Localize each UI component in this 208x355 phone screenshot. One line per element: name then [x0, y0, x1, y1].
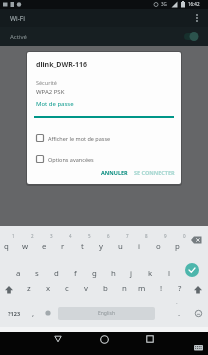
button[interactable]: Options avancées: [36, 154, 94, 164]
button[interactable]: c: [58, 282, 76, 295]
staticText: x: [46, 283, 51, 294]
button[interactable]: 0: [175, 229, 193, 242]
button[interactable]: 2: [23, 229, 41, 242]
button[interactable]: Activé: [0, 27, 208, 46]
staticText: g: [92, 268, 97, 279]
button[interactable]: ,: [27, 300, 39, 326]
button[interactable]: j: [122, 267, 140, 280]
staticText: ?123: [8, 310, 21, 317]
button[interactable]: 5: [80, 229, 98, 242]
staticText: b: [103, 283, 108, 294]
button[interactable]: u: [111, 240, 129, 253]
button[interactable]: English: [58, 307, 155, 320]
button[interactable]: 6: [99, 229, 117, 242]
staticText: y: [99, 241, 103, 252]
button[interactable]: ?123: [2, 300, 26, 326]
staticText: 1: [12, 233, 15, 239]
staticText: m: [138, 283, 146, 294]
staticText: r: [61, 241, 65, 252]
button[interactable]: [97, 332, 111, 346]
staticText: o: [156, 241, 161, 252]
button[interactable]: e: [35, 240, 53, 253]
button[interactable]: 8: [137, 229, 155, 242]
staticText: c: [65, 283, 69, 294]
button[interactable]: [189, 281, 206, 299]
button[interactable]: q: [0, 240, 15, 253]
button[interactable]: [186, 231, 206, 249]
staticText: 2: [31, 233, 34, 239]
staticText: t: [81, 241, 84, 252]
button[interactable]: p: [168, 240, 186, 253]
button[interactable]: z: [20, 282, 38, 295]
button[interactable]: 3: [42, 229, 60, 242]
button[interactable]: i: [130, 240, 148, 253]
staticText: 7: [126, 233, 129, 239]
button[interactable]: [192, 343, 205, 354]
staticText: d: [54, 268, 59, 279]
staticText: English: [98, 310, 116, 317]
button[interactable]: r: [54, 240, 72, 253]
button[interactable]: Afficher le mot de passe: [36, 133, 111, 143]
button[interactable]: h: [104, 267, 122, 280]
staticText: 4: [69, 233, 72, 239]
button[interactable]: [177, 263, 206, 277]
staticText: s: [35, 268, 39, 279]
button[interactable]: [51, 332, 65, 346]
button[interactable]: g: [85, 267, 103, 280]
button[interactable]: s: [28, 267, 46, 280]
button[interactable]: m: [133, 282, 151, 295]
staticText: a: [16, 268, 21, 279]
button[interactable]: n: [115, 282, 133, 295]
button[interactable]: l: [160, 267, 178, 280]
button[interactable]: w: [16, 240, 34, 253]
button[interactable]: [192, 13, 202, 23]
staticText: 3: [50, 233, 53, 239]
button[interactable]: f: [66, 267, 84, 280]
staticText: f: [74, 268, 77, 279]
staticText: dlink_DWR-116: [36, 60, 88, 70]
staticText: 16:42: [188, 1, 200, 7]
staticText: ANNULER: [101, 169, 128, 176]
button[interactable]: 4: [61, 229, 79, 242]
staticText: ?: [178, 283, 182, 294]
button[interactable]: 9: [156, 229, 174, 242]
button[interactable]: !: [152, 282, 170, 295]
staticText: h: [111, 268, 116, 279]
button[interactable]: [190, 300, 206, 326]
button[interactable]: 1: [4, 229, 22, 242]
staticText: e: [42, 241, 47, 252]
button[interactable]: ?: [171, 282, 189, 295]
button[interactable]: a: [9, 267, 27, 280]
staticText: Options avancées: [48, 156, 94, 163]
staticText: q: [4, 241, 9, 252]
staticText: !: [160, 283, 163, 294]
staticText: n: [122, 283, 127, 294]
button[interactable]: [143, 332, 157, 346]
staticText: k: [148, 268, 153, 279]
staticText: w: [22, 241, 29, 252]
staticText: l: [168, 268, 171, 279]
staticText: -: [176, 300, 178, 306]
staticText: 0: [183, 233, 186, 239]
staticText: z: [27, 283, 31, 294]
button[interactable]: .: [171, 300, 187, 326]
staticText: WPA2 PSK: [36, 88, 65, 96]
button[interactable]: k: [141, 267, 159, 280]
button[interactable]: b: [96, 282, 114, 295]
button[interactable]: t: [73, 240, 91, 253]
staticText: 9: [164, 233, 167, 239]
button[interactable]: d: [47, 267, 65, 280]
button[interactable]: 7: [118, 229, 136, 242]
staticText: Activé: [10, 33, 27, 41]
button[interactable]: y: [92, 240, 110, 253]
staticText: p: [175, 241, 180, 252]
button[interactable]: v: [77, 282, 95, 295]
button[interactable]: SE CONNECTER: [134, 169, 175, 176]
staticText: 8: [145, 233, 148, 239]
button[interactable]: [41, 300, 54, 326]
button[interactable]: [0, 281, 17, 299]
staticText: i: [138, 241, 141, 252]
button[interactable]: o: [149, 240, 167, 253]
button[interactable]: ANNULER: [101, 169, 128, 176]
button[interactable]: x: [39, 282, 57, 295]
